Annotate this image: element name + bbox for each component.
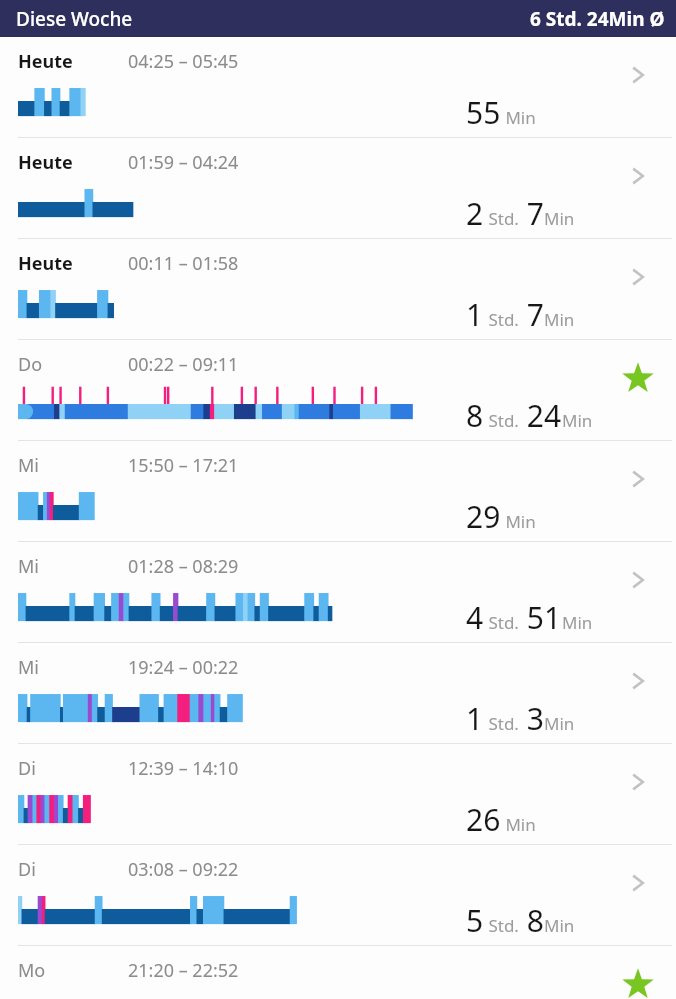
staticText: Di xyxy=(18,756,36,781)
staticText: Di xyxy=(18,857,36,882)
staticText: 1 xyxy=(466,294,484,335)
staticText: Std. xyxy=(484,611,519,634)
staticText: 15:50 – 17:21 xyxy=(128,453,239,478)
button[interactable]: Heute xyxy=(0,137,676,238)
button[interactable]: Mi xyxy=(0,440,676,541)
staticText: Min xyxy=(544,914,575,937)
staticText: 4 xyxy=(466,597,484,638)
staticText: 7 xyxy=(519,193,544,234)
staticText: 04:25 – 05:45 xyxy=(128,49,239,74)
staticText: 2 xyxy=(466,193,484,234)
staticText: Std. xyxy=(484,914,519,937)
button[interactable]: Mi xyxy=(0,642,676,743)
staticText: 12:39 – 14:10 xyxy=(128,756,239,781)
button[interactable]: Details anzeigen xyxy=(622,261,654,293)
staticText: Min xyxy=(544,712,575,735)
staticText: 21:20 – 22:52 xyxy=(128,958,239,983)
button[interactable]: Heute xyxy=(0,238,676,339)
staticText: Min xyxy=(562,611,593,634)
button[interactable]: Details anzeigen xyxy=(622,665,654,697)
button[interactable]: Details anzeigen xyxy=(622,160,654,192)
staticText: 03:08 – 09:22 xyxy=(128,857,239,882)
staticText: Mi xyxy=(18,655,39,680)
button[interactable]: Details anzeigen xyxy=(622,59,654,91)
staticText: 1 xyxy=(466,698,484,739)
staticText: Std. xyxy=(484,308,519,331)
button[interactable]: Details anzeigen xyxy=(622,463,654,495)
staticText: 3 xyxy=(519,698,544,739)
staticText: 8 xyxy=(466,395,484,436)
button[interactable]: Di xyxy=(0,844,676,945)
button[interactable]: Details anzeigen xyxy=(622,867,654,899)
staticText: Heute xyxy=(18,49,73,74)
staticText: Std. xyxy=(484,207,519,230)
staticText: Min xyxy=(544,207,575,230)
button[interactable]: Details anzeigen xyxy=(622,766,654,798)
button[interactable]: Details anzeigen xyxy=(622,564,654,596)
staticText: 29 xyxy=(466,496,501,537)
staticText: Std. xyxy=(484,712,519,735)
staticText: 26 xyxy=(466,799,501,840)
staticText: 01:28 – 08:29 xyxy=(128,554,239,579)
staticText: Mi xyxy=(18,554,39,579)
staticText: Min xyxy=(562,409,593,432)
staticText: Mo xyxy=(18,958,46,983)
staticText: Heute xyxy=(18,150,73,175)
button[interactable]: Bewertung xyxy=(620,966,656,999)
button[interactable]: Do xyxy=(0,339,676,440)
staticText: Min xyxy=(501,510,536,533)
staticText: 7 xyxy=(519,294,544,335)
staticText: 24 xyxy=(519,395,562,436)
button[interactable]: Di xyxy=(0,743,676,844)
staticText: Min xyxy=(501,106,536,129)
staticText: 00:22 – 09:11 xyxy=(128,352,239,377)
staticText: Min xyxy=(501,813,536,836)
staticText: 00:11 – 01:58 xyxy=(128,251,239,276)
button[interactable]: Mi xyxy=(0,541,676,642)
staticText: Do xyxy=(18,352,43,377)
staticText: Heute xyxy=(18,251,73,276)
button[interactable]: Heute xyxy=(0,37,676,137)
staticText: Min xyxy=(544,308,575,331)
staticText: 5 xyxy=(466,900,484,941)
staticText: Mi xyxy=(18,453,39,478)
staticText: 51 xyxy=(519,597,562,638)
staticText: Diese Woche xyxy=(16,6,133,32)
staticText: 55 xyxy=(466,92,501,133)
staticText: 01:59 – 04:24 xyxy=(128,150,239,175)
button[interactable]: Bewertung xyxy=(620,360,656,396)
staticText: Std. xyxy=(484,409,519,432)
staticText: 19:24 – 00:22 xyxy=(128,655,239,680)
button[interactable]: Mo xyxy=(0,945,676,999)
staticText: 6 Std. 24Min Ø xyxy=(530,6,665,32)
staticText: 8 xyxy=(519,900,544,941)
